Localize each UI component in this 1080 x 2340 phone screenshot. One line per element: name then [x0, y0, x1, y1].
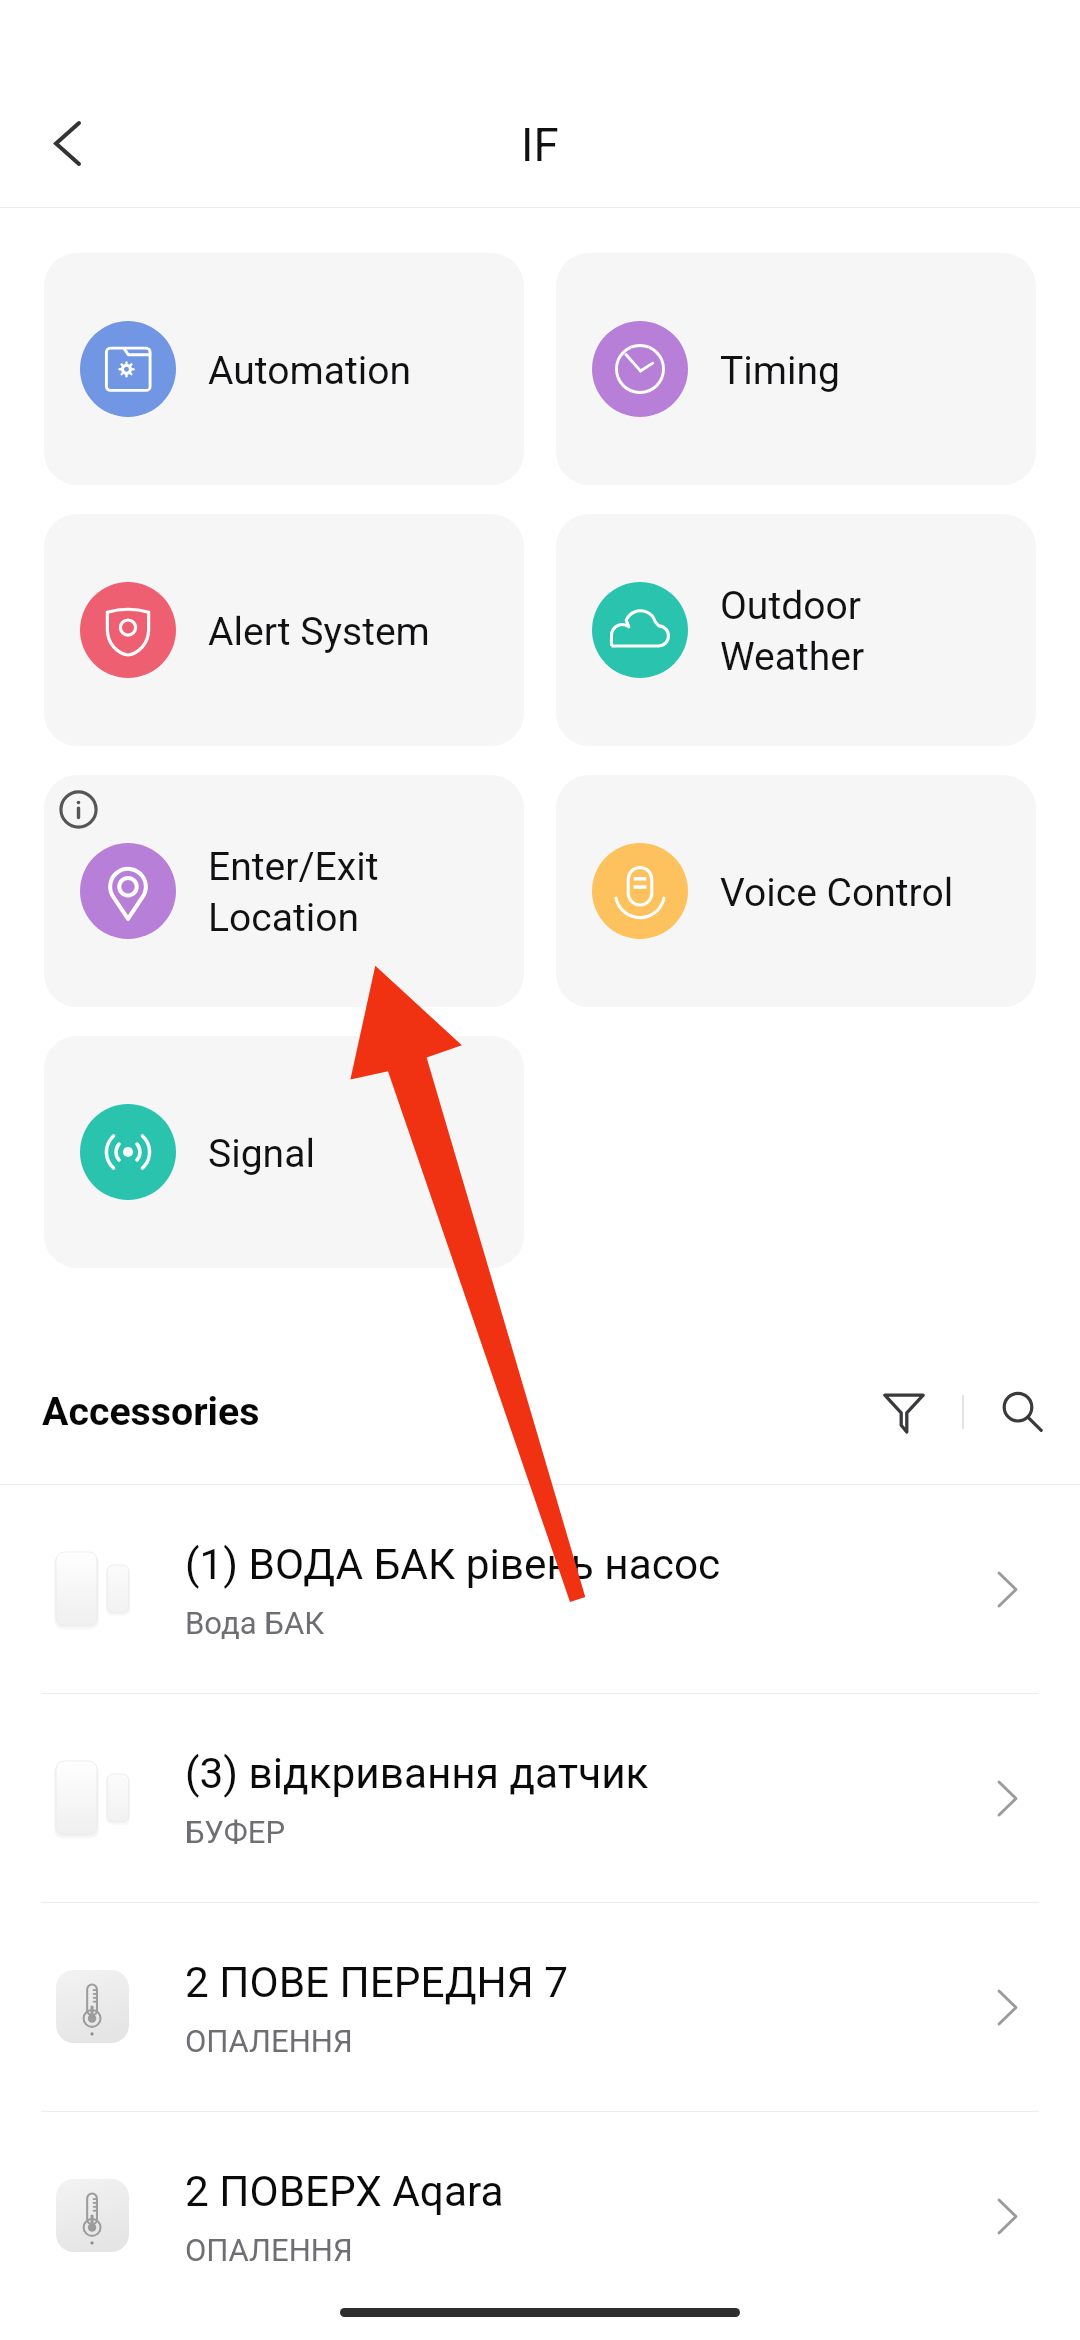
staticText: 2 ПОВЕ ПЕРЕДНЯ 7 — [185, 1958, 568, 2008]
staticText: БУФЕР — [185, 1814, 286, 1850]
button[interactable]: Search — [964, 1376, 1080, 1448]
staticText: Timing — [720, 344, 841, 395]
button[interactable]: Enter/Exit Location — [44, 775, 524, 1007]
staticText: Enter/Exit Location — [208, 840, 379, 942]
staticText: Alert System — [208, 605, 430, 656]
staticText: Accessories — [42, 1389, 260, 1435]
button[interactable]: Outdoor Weather — [556, 514, 1036, 746]
staticText: Outdoor Weather — [720, 579, 865, 681]
staticText: ОПАЛЕННЯ — [185, 2232, 353, 2268]
staticText: ОПАЛЕННЯ — [185, 2023, 353, 2059]
button[interactable]: 2 ПОВЕРХ Aqara — [0, 2112, 1080, 2320]
button[interactable]: 2 ПОВЕ ПЕРЕДНЯ 7 — [0, 1903, 1080, 2111]
staticText: 2 ПОВЕРХ Aqara — [185, 2167, 504, 2217]
button[interactable]: Alert System — [44, 514, 524, 746]
staticText: Voice Control — [720, 866, 954, 917]
staticText: IF — [521, 119, 559, 172]
button[interactable]: Filter — [846, 1376, 962, 1448]
button[interactable]: (1) ВОДА БАК рівень насос — [0, 1485, 1080, 1693]
staticText: (3) відкривання датчик — [185, 1749, 649, 1799]
button[interactable]: Signal — [44, 1036, 524, 1268]
button[interactable]: Automation — [44, 253, 524, 485]
button[interactable]: Timing — [556, 253, 1036, 485]
staticText: (1) ВОДА БАК рівень насос — [185, 1540, 721, 1590]
button[interactable]: Back — [44, 114, 91, 172]
staticText: Signal — [208, 1127, 315, 1178]
staticText: Вода БАК — [185, 1605, 325, 1641]
staticText: Automation — [208, 344, 412, 395]
button[interactable]: (3) відкривання датчик — [0, 1694, 1080, 1902]
button[interactable]: Voice Control — [556, 775, 1036, 1007]
